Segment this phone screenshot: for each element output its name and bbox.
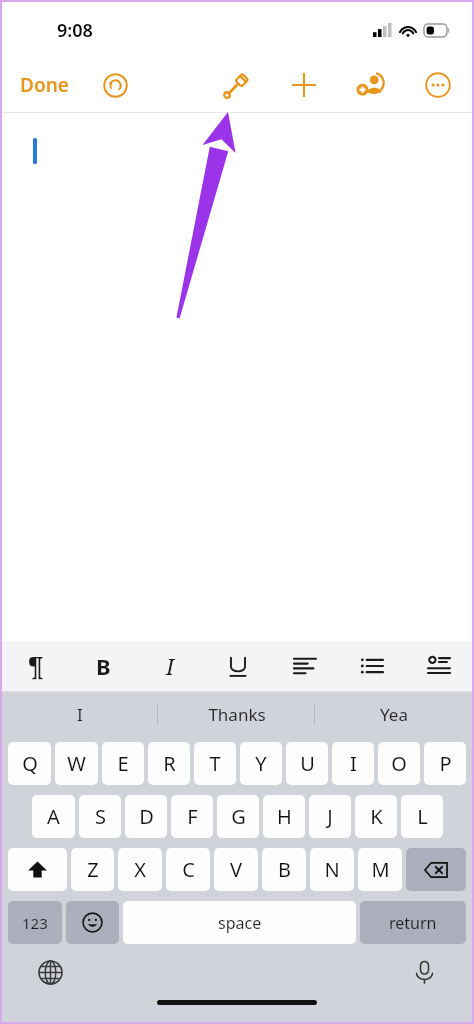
- button[interactable]: X: [118, 848, 162, 891]
- staticText: K: [370, 803, 383, 830]
- staticText: Q: [22, 750, 38, 777]
- button[interactable]: S: [79, 795, 121, 838]
- button[interactable]: W: [55, 742, 98, 785]
- staticText: G: [231, 803, 246, 830]
- staticText: B: [278, 856, 291, 883]
- staticText: Thanks: [208, 703, 266, 726]
- staticText: C: [182, 856, 195, 883]
- button[interactable]: Bulleted list: [338, 641, 405, 691]
- button[interactable]: Markup: [214, 62, 260, 108]
- staticText: 9:08: [57, 18, 93, 43]
- button[interactable]: Z: [71, 848, 114, 891]
- button[interactable]: E: [102, 742, 144, 785]
- button[interactable]: R: [148, 742, 190, 785]
- button[interactable]: F: [171, 795, 213, 838]
- button[interactable]: Alignment: [271, 641, 338, 691]
- button[interactable]: Insert list: [405, 641, 472, 691]
- button[interactable]: C: [166, 848, 210, 891]
- button[interactable]: Y: [240, 742, 282, 785]
- staticText: ¶: [28, 649, 44, 683]
- button[interactable]: N: [310, 848, 354, 891]
- staticText: U: [300, 750, 315, 777]
- staticText: Yea: [380, 703, 408, 726]
- button[interactable]: 123: [8, 901, 62, 944]
- staticText: I: [350, 750, 357, 777]
- button[interactable]: I: [332, 742, 374, 785]
- button[interactable]: Paragraph style: [2, 641, 70, 691]
- staticText: R: [163, 750, 176, 777]
- button[interactable]: M: [358, 848, 402, 891]
- staticText: N: [324, 856, 340, 883]
- staticText: B: [96, 651, 111, 681]
- staticText: Y: [255, 750, 267, 777]
- staticText: space: [218, 912, 262, 934]
- button[interactable]: Emoji: [66, 901, 119, 944]
- button[interactable]: Bold: [70, 641, 137, 691]
- button[interactable]: H: [263, 795, 305, 838]
- button[interactable]: K: [355, 795, 397, 838]
- button[interactable]: B: [262, 848, 306, 891]
- button[interactable]: Change keyboard: [30, 952, 70, 992]
- staticText: H: [277, 803, 292, 830]
- staticText: D: [139, 803, 154, 830]
- button[interactable]: L: [401, 795, 443, 838]
- staticText: X: [134, 856, 146, 883]
- staticText: F: [187, 803, 198, 830]
- button[interactable]: V: [214, 848, 258, 891]
- button[interactable]: Done: [10, 66, 79, 104]
- staticText: Done: [20, 72, 69, 98]
- button[interactable]: space: [123, 901, 356, 944]
- staticText: 123: [22, 913, 48, 933]
- staticText: J: [327, 803, 333, 830]
- button[interactable]: Dictation: [404, 952, 444, 992]
- staticText: return: [389, 912, 437, 934]
- button[interactable]: Q: [8, 742, 51, 785]
- staticText: I: [77, 703, 83, 726]
- button[interactable]: J: [309, 795, 351, 838]
- staticText: M: [371, 856, 390, 883]
- staticText: S: [95, 803, 106, 830]
- staticText: O: [391, 750, 407, 777]
- button[interactable]: P: [424, 742, 466, 785]
- button[interactable]: Backspace: [406, 848, 466, 891]
- staticText: Z: [87, 856, 99, 883]
- staticText: A: [47, 803, 60, 830]
- button[interactable]: More options: [416, 63, 460, 107]
- button[interactable]: Shift: [8, 848, 67, 891]
- button[interactable]: Add people: [347, 62, 393, 108]
- button[interactable]: O: [378, 742, 420, 785]
- staticText: I: [166, 651, 175, 681]
- button[interactable]: D: [125, 795, 167, 838]
- button[interactable]: Undo: [94, 64, 136, 106]
- button[interactable]: Thanks: [158, 692, 315, 736]
- button[interactable]: I: [2, 692, 158, 736]
- staticText: W: [67, 750, 86, 777]
- button[interactable]: Add: [282, 63, 326, 107]
- button[interactable]: Yea: [315, 692, 472, 736]
- staticText: V: [230, 856, 242, 883]
- button[interactable]: U: [286, 742, 328, 785]
- button[interactable]: Underline: [204, 641, 271, 691]
- staticText: L: [417, 803, 428, 830]
- staticText: P: [439, 750, 452, 777]
- staticText: T: [209, 750, 221, 777]
- button[interactable]: T: [194, 742, 236, 785]
- staticText: E: [117, 750, 129, 777]
- button[interactable]: Italic: [137, 641, 204, 691]
- button[interactable]: G: [217, 795, 259, 838]
- button[interactable]: return: [360, 901, 466, 944]
- button[interactable]: A: [32, 795, 75, 838]
